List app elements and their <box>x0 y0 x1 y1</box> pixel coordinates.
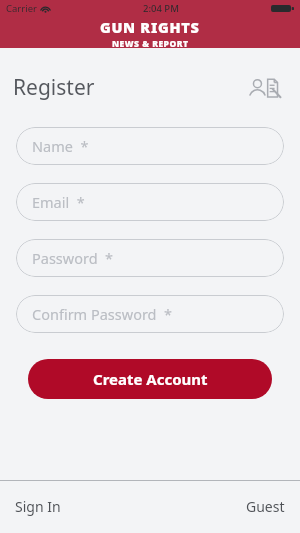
staticText: Guest <box>246 497 285 516</box>
button[interactable]: Password * <box>16 239 284 277</box>
staticText: Email * <box>32 192 85 212</box>
staticText: Create Account <box>93 369 208 389</box>
staticText: Confirm Password * <box>32 304 173 324</box>
button[interactable]: Register new account <box>248 73 288 103</box>
staticText: Password * <box>32 248 114 268</box>
button[interactable]: Name * <box>16 127 284 165</box>
button[interactable]: Confirm Password * <box>16 295 284 333</box>
button[interactable]: Email * <box>16 183 284 221</box>
staticText: 2:04 PM <box>143 2 179 15</box>
staticText: Name * <box>32 136 89 156</box>
staticText: GUN RIGHTS <box>100 17 200 37</box>
button[interactable]: Guest <box>244 488 287 525</box>
staticText: Carrier <box>6 2 37 15</box>
staticText: Register <box>13 73 95 102</box>
button[interactable]: Create Account <box>28 359 272 399</box>
button[interactable]: Sign In <box>13 488 63 525</box>
staticText: Sign In <box>15 497 61 516</box>
staticText: NEWS & REPORT <box>112 38 189 50</box>
